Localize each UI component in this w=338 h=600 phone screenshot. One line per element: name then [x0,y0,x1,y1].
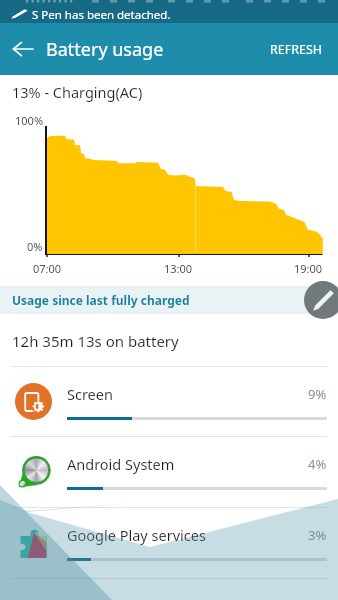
staticText: 0% [27,239,43,254]
button[interactable]: REFRESH [255,23,338,75]
staticText: S Pen has been detached. [32,7,171,23]
staticText: Google Play services [67,525,206,545]
button[interactable]: Android System [0,436,338,507]
button[interactable]: Air command [304,281,338,319]
button[interactable]: Navigate up [0,23,46,75]
staticText: Usage since last fully charged [12,292,190,308]
staticText: 4% [308,455,327,473]
button[interactable]: Screen [0,366,338,436]
staticText: 19:00 [294,261,323,276]
staticText: 3% [308,526,327,544]
staticText: REFRESH [270,41,323,58]
staticText: Android System [67,454,175,474]
button[interactable]: Google Play services [0,507,338,578]
staticText: Battery usage [46,37,164,62]
staticText: 12h 35m 13s on battery [12,331,179,351]
staticText: 9% [308,385,327,403]
staticText: 100% [15,113,44,128]
staticText: 07:00 [33,261,62,276]
staticText: Screen [67,384,113,404]
staticText: 13% - Charging(AC) [12,82,143,102]
staticText: 13:00 [164,261,193,276]
